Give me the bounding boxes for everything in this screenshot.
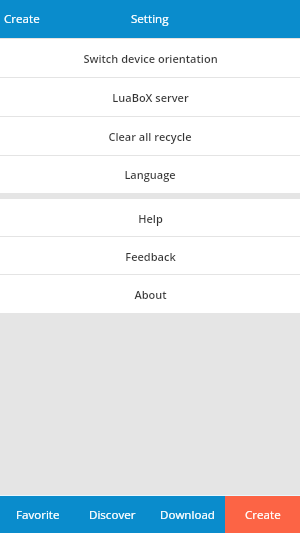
staticText: Clear all recycle xyxy=(108,129,192,144)
staticText: Language xyxy=(124,167,176,182)
button[interactable]: Discover xyxy=(75,496,150,533)
button[interactable]: Help xyxy=(0,199,300,237)
staticText: Help xyxy=(138,211,163,226)
button[interactable]: Download xyxy=(150,496,225,533)
staticText: Feedback xyxy=(125,249,176,264)
staticText: Switch device orientation xyxy=(83,51,218,66)
button[interactable]: About xyxy=(0,275,300,313)
staticText: About xyxy=(134,287,167,302)
button[interactable]: Favorite xyxy=(0,496,75,533)
staticText: Discover xyxy=(89,507,136,523)
button[interactable]: Create xyxy=(225,496,300,533)
staticText: Favorite xyxy=(16,507,60,523)
button[interactable]: Clear all recycle xyxy=(0,117,300,156)
staticText: Download xyxy=(160,507,215,523)
staticText: Create xyxy=(4,11,40,27)
button[interactable]: Feedback xyxy=(0,237,300,275)
button[interactable]: LuaBoX server xyxy=(0,78,300,117)
staticText: LuaBoX server xyxy=(112,90,189,105)
button[interactable]: Create xyxy=(0,0,48,38)
staticText: Setting xyxy=(131,11,169,27)
staticText: Create xyxy=(245,507,281,523)
button[interactable]: Language xyxy=(0,156,300,193)
button[interactable]: Switch device orientation xyxy=(0,39,300,78)
